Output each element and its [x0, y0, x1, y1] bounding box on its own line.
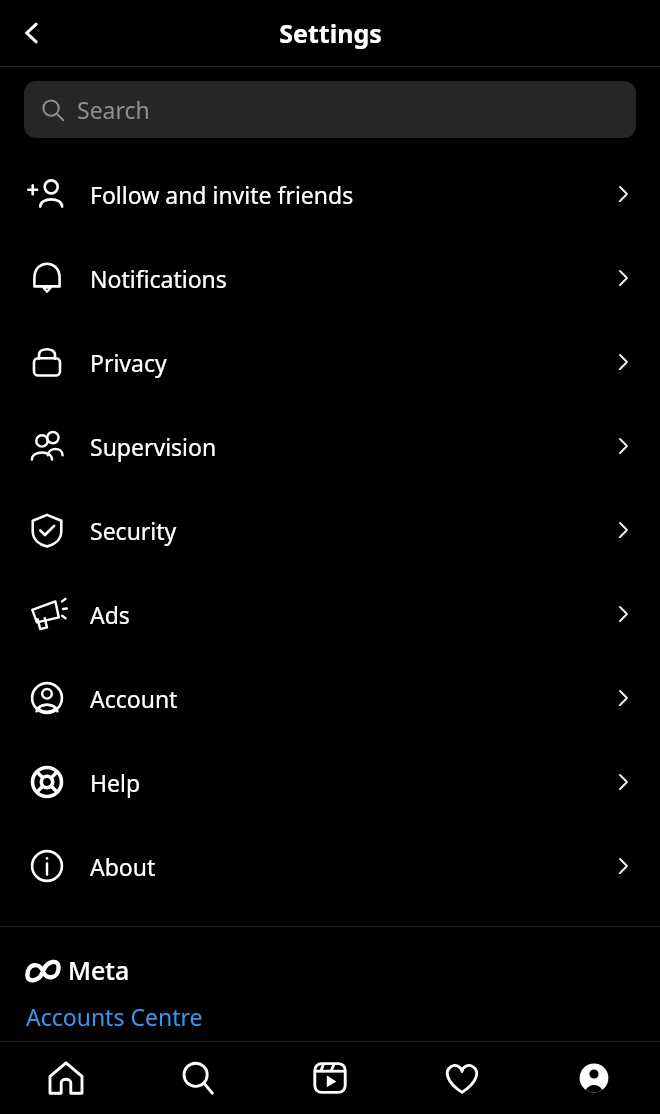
staticText: Ads — [90, 599, 612, 630]
staticText: Accounts Centre — [26, 1001, 203, 1032]
button[interactable]: About — [0, 824, 660, 908]
button[interactable]: Help — [0, 740, 660, 824]
button[interactable]: Back — [6, 7, 58, 59]
button[interactable]: Profile — [528, 1042, 660, 1114]
button[interactable]: Reels — [264, 1042, 396, 1114]
button[interactable]: Search — [132, 1042, 264, 1114]
staticText: Follow and invite friends — [90, 179, 612, 210]
button[interactable]: Ads — [0, 572, 660, 656]
button[interactable]: Follow and invite friends — [0, 152, 660, 236]
button[interactable]: Account — [0, 656, 660, 740]
staticText: Privacy — [90, 347, 612, 378]
staticText: Security — [90, 515, 612, 546]
staticText: About — [90, 851, 612, 882]
button[interactable]: Supervision — [0, 404, 660, 488]
button[interactable]: Notifications — [0, 236, 660, 320]
staticText: Account — [90, 683, 612, 714]
staticText: Meta — [68, 953, 130, 987]
button[interactable]: Home — [0, 1042, 132, 1114]
button[interactable]: Privacy — [0, 320, 660, 404]
staticText: Settings — [279, 16, 382, 50]
button[interactable]: Security — [0, 488, 660, 572]
button[interactable]: Likes — [396, 1042, 528, 1114]
staticText: Search — [77, 94, 150, 125]
button[interactable]: Accounts Centre — [26, 1001, 203, 1032]
staticText: Supervision — [90, 431, 612, 462]
staticText: Help — [90, 767, 612, 798]
staticText: Notifications — [90, 263, 612, 294]
button[interactable]: Search — [24, 81, 636, 138]
